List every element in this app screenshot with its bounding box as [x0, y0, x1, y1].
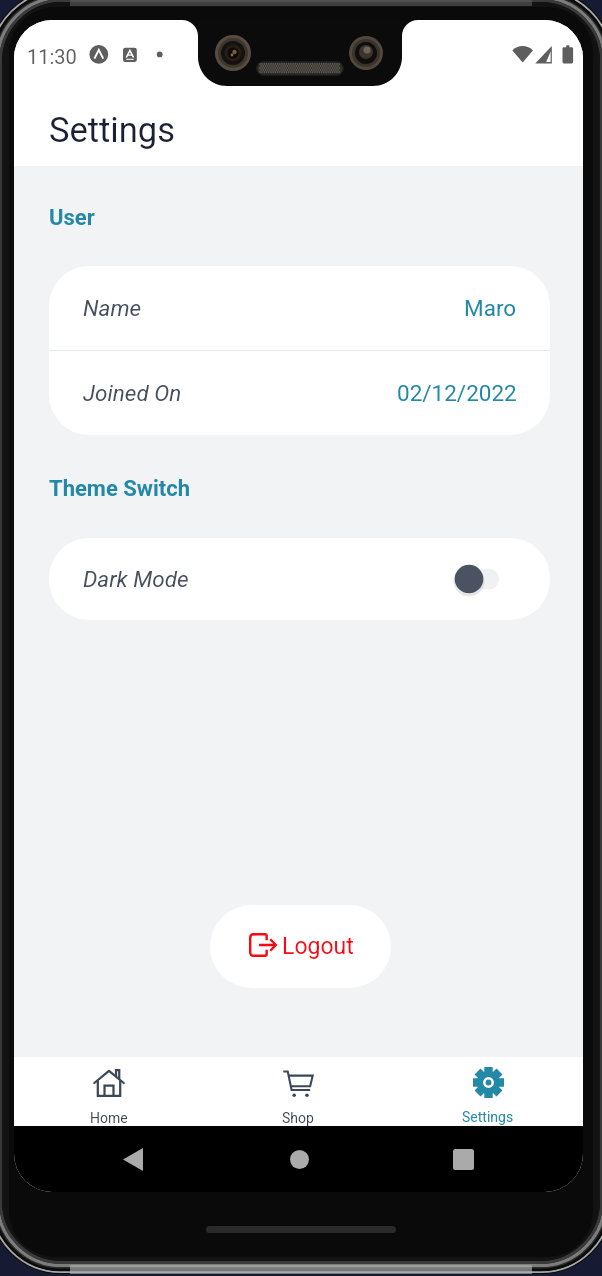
staticText: 02/12/2022 [397, 380, 517, 406]
button[interactable]: Home [14, 1057, 203, 1126]
button[interactable]: Dark mode toggle [447, 562, 499, 596]
button[interactable]: Home [269, 1128, 329, 1190]
staticText: Logout [282, 933, 354, 960]
button[interactable]: Joined On [49, 351, 550, 435]
staticText: User [49, 205, 95, 231]
button[interactable]: Dark Mode [49, 538, 550, 620]
button[interactable]: Recent apps [433, 1128, 493, 1190]
button[interactable]: Logout [210, 905, 391, 988]
staticText: Shop [282, 1110, 314, 1126]
staticText: Dark Mode [83, 566, 189, 592]
staticText: 11:30 [27, 45, 77, 68]
button[interactable]: Settings [393, 1057, 583, 1126]
button[interactable]: Back [103, 1128, 163, 1190]
staticText: Joined On [83, 380, 182, 406]
staticText: Name [83, 295, 142, 321]
staticText: Maro [464, 295, 517, 321]
staticText: Settings [462, 1109, 514, 1125]
staticText: Theme Switch [49, 476, 190, 502]
button[interactable]: Name [49, 266, 550, 350]
button[interactable]: Shop [203, 1057, 393, 1126]
staticText: Settings [49, 110, 175, 150]
staticText: Home [90, 1110, 128, 1126]
